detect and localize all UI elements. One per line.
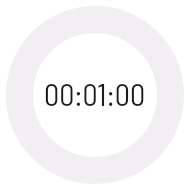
- button[interactable]: Timer 00:01:00, tap to pause: [0, 0, 190, 190]
- staticText: 00:01:00: [44, 76, 146, 112]
